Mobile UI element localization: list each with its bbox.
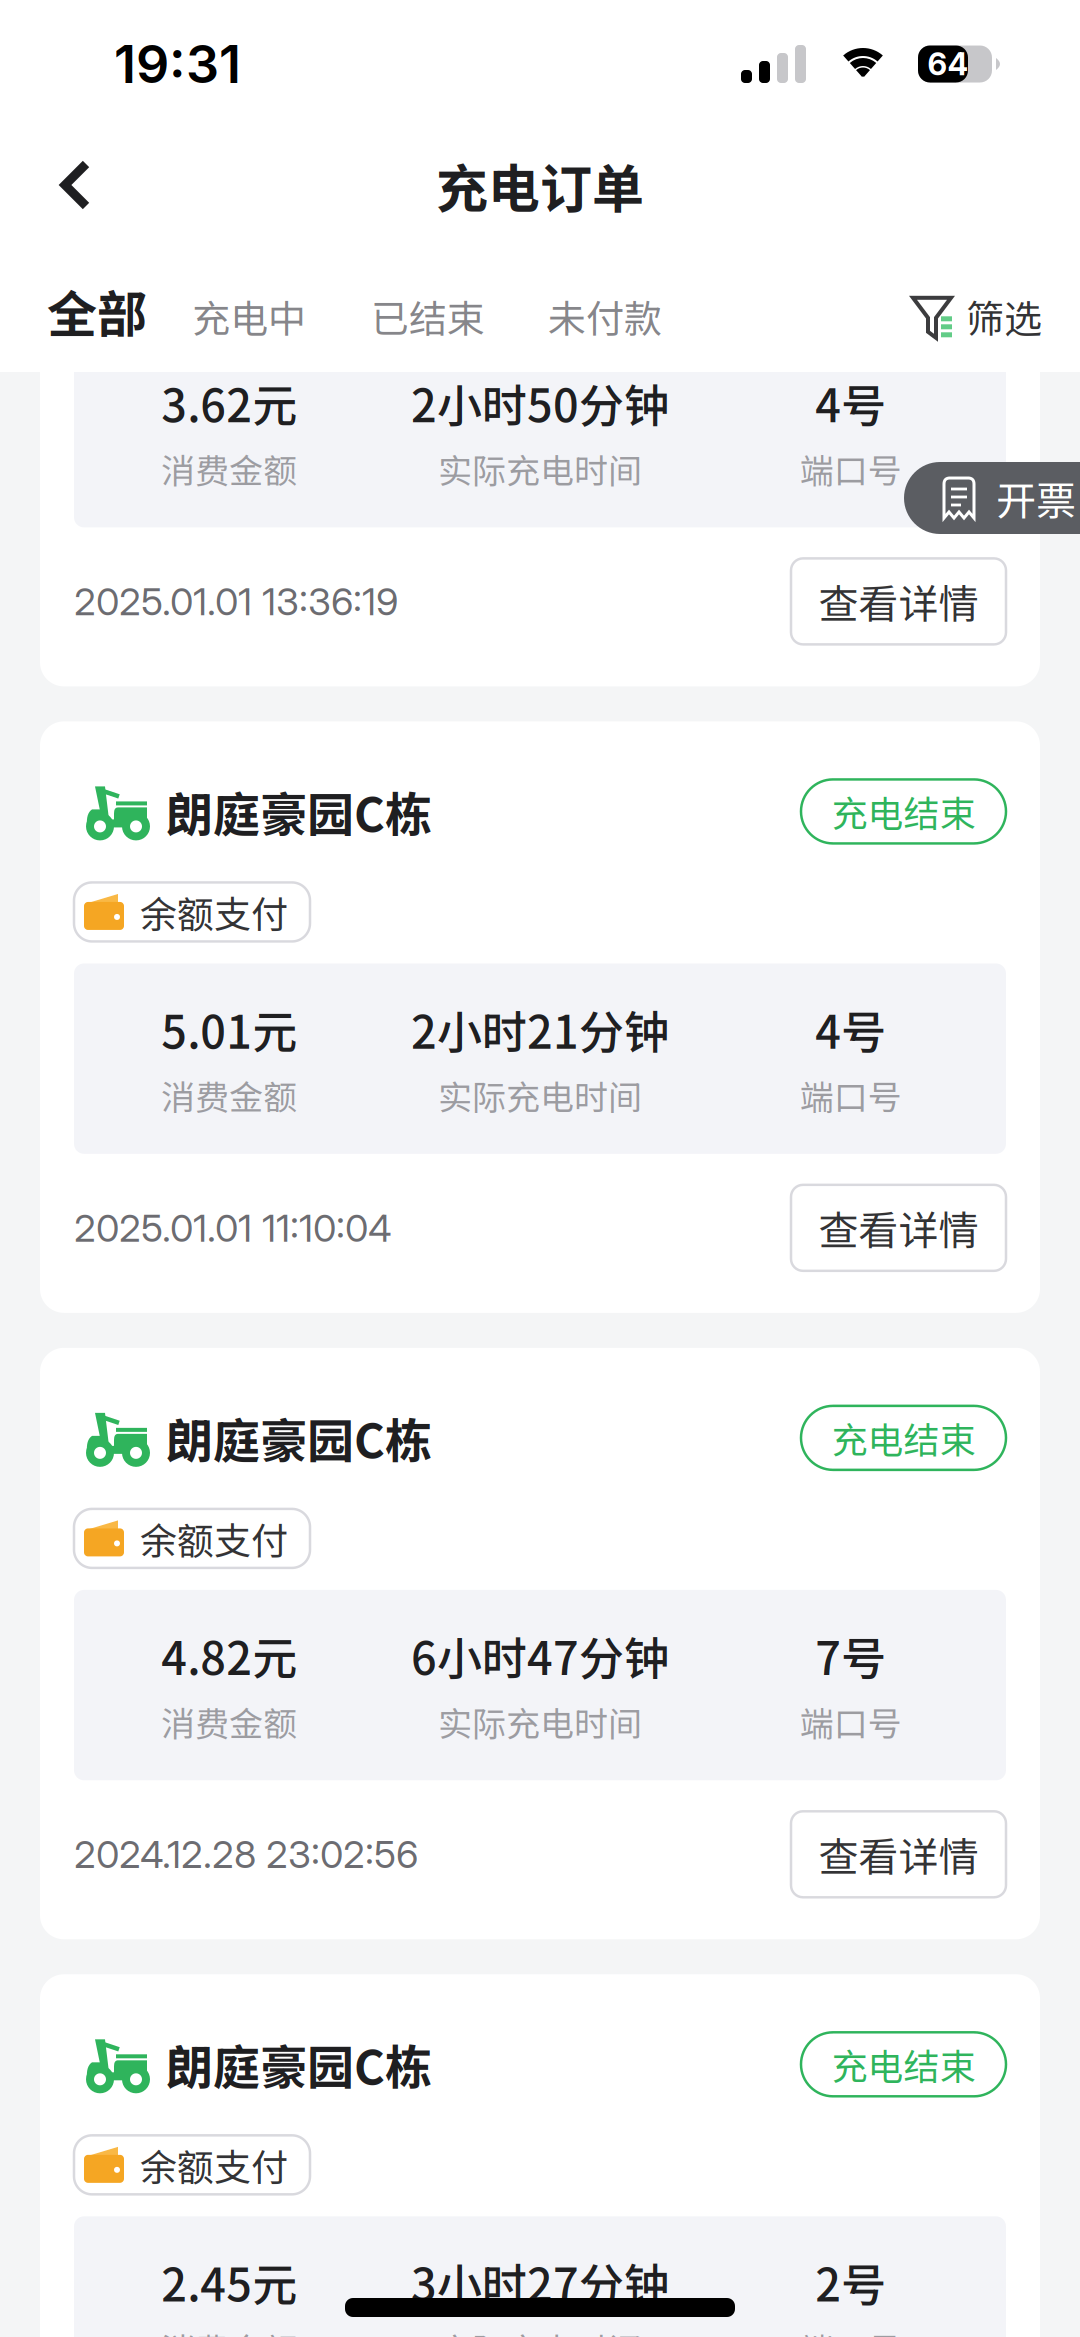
staticText: 3小时27分钟	[411, 2249, 669, 2314]
staticText: 朗庭豪园C栋	[166, 2030, 432, 2098]
staticText: 2.45元	[161, 2249, 297, 2314]
button[interactable]: 3.62元	[40, 337, 1040, 686]
staticText: 查看详情	[818, 1825, 978, 1883]
staticText: 已结束	[371, 289, 485, 344]
staticText: 2025.01.01 13:36:19	[74, 578, 398, 624]
staticText: 全部	[47, 275, 147, 347]
staticText: 2小时21分钟	[411, 996, 669, 1062]
button[interactable]: 返回	[0, 132, 125, 238]
staticText: 朗庭豪园C栋	[166, 1404, 432, 1472]
staticText: 端口号	[800, 1697, 902, 1746]
staticText: 消费金额	[161, 2323, 297, 2337]
staticText: 充电结束	[831, 2038, 975, 2090]
button[interactable]: 查看详情	[791, 1185, 1006, 1271]
staticText: 端口号	[800, 2323, 902, 2337]
staticText: 实际充电时间	[438, 1071, 642, 1120]
button[interactable]: 查看详情	[791, 1811, 1006, 1897]
staticText: 余额支付	[140, 1512, 288, 1565]
button[interactable]: 充电中	[192, 289, 306, 344]
staticText: 余额支付	[140, 2138, 288, 2192]
staticText: 19:31	[114, 32, 241, 95]
staticText: 实际充电时间	[438, 2323, 642, 2337]
staticText: 4号	[815, 996, 886, 1062]
staticText: 消费金额	[161, 1697, 297, 1746]
staticText: 未付款	[548, 289, 662, 344]
staticText: 端口号	[800, 444, 902, 493]
staticText: 充电结束	[831, 785, 975, 837]
staticText: 筛选	[966, 289, 1042, 344]
staticText: 4.82元	[161, 1623, 297, 1688]
staticText: 6小时47分钟	[411, 1623, 669, 1688]
staticText: 朗庭豪园C栋	[166, 777, 432, 845]
staticText: 2024.12.28 23:02:56	[74, 1831, 418, 1877]
staticText: 充电订单	[436, 147, 644, 223]
staticText: 2小时50分钟	[411, 370, 669, 435]
staticText: 7号	[815, 1623, 886, 1688]
button[interactable]: 已结束	[371, 289, 485, 344]
staticText: 查看详情	[818, 1199, 978, 1257]
button[interactable]: 未付款	[548, 289, 662, 344]
staticText: 5.01元	[161, 996, 297, 1062]
staticText: 消费金额	[161, 1071, 297, 1120]
button[interactable]: 筛选	[910, 289, 1042, 344]
button[interactable]: 朗庭豪园C栋	[40, 1348, 1040, 1939]
staticText: 4号	[815, 370, 886, 435]
staticText: 充电中	[192, 289, 306, 344]
staticText: 实际充电时间	[438, 444, 642, 493]
staticText: 查看详情	[818, 572, 978, 630]
staticText: 实际充电时间	[438, 1697, 642, 1746]
staticText: 64	[927, 45, 968, 83]
staticText: 充电结束	[831, 1412, 975, 1464]
staticText: 消费金额	[161, 444, 297, 493]
staticText: 开票	[996, 469, 1076, 527]
button[interactable]: 开票	[904, 462, 1080, 534]
button[interactable]: 朗庭豪园C栋	[40, 1974, 1040, 2337]
staticText: 3.62元	[161, 370, 297, 435]
button[interactable]: 查看详情	[791, 558, 1006, 644]
button[interactable]: 朗庭豪园C栋	[40, 721, 1040, 1313]
staticText: 余额支付	[140, 885, 288, 939]
staticText: 2025.01.01 11:10:04	[74, 1205, 392, 1251]
staticText: 2号	[815, 2249, 886, 2314]
staticText: 端口号	[800, 1071, 902, 1120]
button[interactable]: 全部	[47, 275, 147, 347]
